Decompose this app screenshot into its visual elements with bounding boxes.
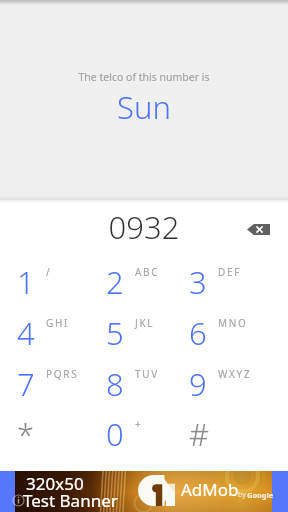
staticText: GHI [46, 316, 70, 330]
staticText: PQRS [46, 367, 79, 381]
button[interactable]: 8 [90, 353, 180, 404]
staticText: DEF [218, 265, 242, 279]
staticText: 4 [17, 312, 35, 354]
staticText: 2 [106, 261, 124, 303]
staticText: 9 [189, 363, 207, 405]
staticText: 3 [189, 261, 207, 303]
staticText: TUV [135, 367, 159, 381]
staticText: JKL [135, 316, 155, 330]
button[interactable]: 2 [90, 251, 180, 302]
staticText: 7 [17, 363, 35, 405]
staticText: AdMob [181, 478, 239, 501]
button[interactable]: 5 [90, 302, 180, 353]
button[interactable]: 0 [90, 403, 180, 454]
button[interactable]: 1 [0, 251, 90, 302]
button[interactable]: 3 [180, 251, 288, 302]
button[interactable]: * [0, 403, 90, 454]
staticText: 0932 [0, 206, 288, 248]
staticText: * [17, 413, 35, 455]
staticText: The telco of this number is [0, 70, 288, 84]
staticText: 6 [189, 312, 207, 354]
staticText: 320x50 [26, 472, 84, 495]
button[interactable]: 6 [180, 302, 288, 353]
staticText: Google [247, 490, 274, 500]
staticText: ABC [135, 265, 160, 279]
staticText: 1 [17, 261, 35, 303]
button[interactable]: 320x50 [0, 471, 288, 512]
button[interactable]: 4 [0, 302, 90, 353]
staticText: 8 [106, 363, 124, 405]
button[interactable]: # [180, 403, 288, 454]
staticText: 5 [106, 312, 124, 354]
button[interactable]: 7 [0, 353, 90, 404]
staticText: Sun [0, 86, 288, 128]
staticText: / [46, 265, 52, 279]
staticText: 0 [106, 413, 124, 455]
button[interactable]: Backspace [236, 207, 280, 251]
staticText: WXYZ [218, 367, 252, 381]
staticText: by [238, 490, 246, 500]
staticText: # [189, 413, 210, 455]
staticText: + [135, 417, 143, 431]
staticText: MNO [218, 316, 248, 330]
button[interactable]: 9 [180, 353, 288, 404]
staticText: Test Banner [23, 489, 118, 512]
